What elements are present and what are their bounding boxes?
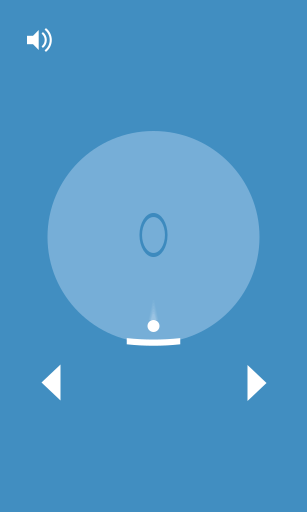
button[interactable]: Sound on [22,18,66,62]
button[interactable]: Move left [19,350,83,414]
staticText: 0 [137,195,170,273]
button[interactable]: Move right [225,351,289,415]
